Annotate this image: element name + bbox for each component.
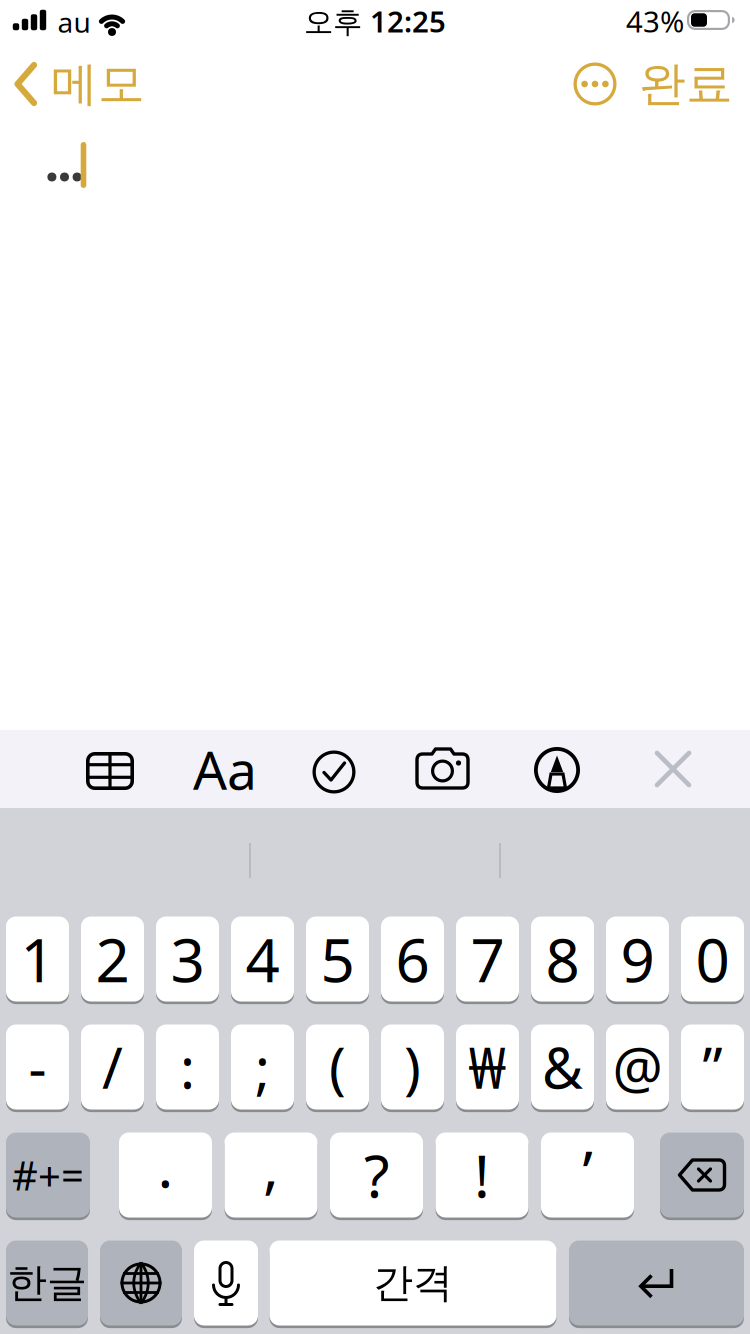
button[interactable]: ” — [681, 1023, 744, 1111]
staticText: ? — [364, 1136, 389, 1214]
button[interactable]: , — [224, 1131, 317, 1219]
staticText: 43% — [626, 1, 684, 40]
staticText: au — [57, 3, 90, 41]
button[interactable]: 3 — [156, 915, 219, 1003]
staticText: 7 — [470, 919, 504, 999]
staticText: 1 — [20, 919, 54, 999]
button[interactable]: 5 — [306, 915, 369, 1003]
button[interactable]: & — [531, 1023, 594, 1111]
button[interactable]: 간격 — [269, 1239, 556, 1327]
staticText: 5 — [320, 919, 354, 999]
button[interactable]: 더 보기 — [570, 59, 620, 109]
staticText: Aa — [193, 734, 257, 804]
button[interactable]: 서식 — [190, 739, 260, 799]
button[interactable]: #+= — [6, 1131, 90, 1219]
button[interactable]: 0 — [681, 915, 744, 1003]
staticText: 9 — [620, 919, 654, 999]
staticText: / — [102, 1030, 123, 1104]
staticText: ; — [255, 1030, 270, 1104]
button[interactable]: @ — [606, 1023, 669, 1111]
staticText: . — [157, 1126, 173, 1204]
staticText: 메모 — [51, 55, 145, 113]
button[interactable]: 한글 — [6, 1239, 88, 1327]
staticText: 완료 — [639, 55, 733, 113]
staticText: 8 — [545, 919, 579, 999]
button[interactable]: 닫기 — [649, 745, 697, 793]
staticText: 6 — [395, 919, 429, 999]
button[interactable]: 메모 — [14, 57, 194, 111]
button[interactable]: ₩ — [456, 1023, 519, 1111]
button[interactable]: 체크리스트 — [304, 742, 364, 802]
button[interactable]: ) — [381, 1023, 444, 1111]
staticText: #+= — [12, 1148, 84, 1201]
button[interactable]: 마크업 — [532, 745, 582, 795]
button[interactable]: . — [119, 1131, 212, 1219]
button[interactable]: ; — [231, 1023, 294, 1111]
staticText: : — [180, 1030, 195, 1104]
button[interactable]: 1 — [6, 915, 69, 1003]
button[interactable]: ( — [306, 1023, 369, 1111]
staticText: @ — [612, 1030, 662, 1104]
staticText: ( — [329, 1030, 346, 1104]
staticText: ’ — [582, 1132, 592, 1210]
button[interactable]: 카메라 — [415, 746, 473, 796]
staticText: , — [263, 1126, 279, 1204]
button[interactable]: ! — [435, 1131, 528, 1219]
staticText: ” — [702, 1030, 722, 1104]
button[interactable]: 표 — [80, 741, 140, 801]
button[interactable]: 2 — [81, 915, 144, 1003]
button[interactable]: 완료 — [638, 58, 734, 110]
button[interactable]: 7 — [456, 915, 519, 1003]
button[interactable]: 리턴 — [569, 1239, 744, 1327]
staticText: 3 — [170, 919, 204, 999]
button[interactable]: : — [156, 1023, 219, 1111]
button[interactable]: / — [81, 1023, 144, 1111]
button[interactable]: 9 — [606, 915, 669, 1003]
button[interactable]: ’ — [541, 1131, 634, 1219]
button[interactable]: ? — [330, 1131, 423, 1219]
staticText: 한글 — [7, 1258, 87, 1307]
staticText: ! — [474, 1136, 490, 1214]
button[interactable]: 받아쓰기 — [194, 1239, 258, 1327]
button[interactable]: 4 — [231, 915, 294, 1003]
staticText: 0 — [695, 919, 729, 999]
staticText: 4 — [245, 919, 279, 999]
button[interactable]: 지우기 — [660, 1131, 744, 1219]
staticText: ₩ — [468, 1030, 506, 1104]
staticText: ) — [404, 1030, 421, 1104]
button[interactable]: 다음 키보드 — [100, 1239, 182, 1327]
staticText: 간격 — [373, 1258, 453, 1307]
staticText: & — [542, 1030, 583, 1104]
button[interactable]: 6 — [381, 915, 444, 1003]
button[interactable]: - — [6, 1023, 69, 1111]
button[interactable]: 8 — [531, 915, 594, 1003]
staticText: - — [28, 1030, 46, 1104]
staticText: 오후 12:25 — [304, 1, 446, 40]
staticText: 2 — [95, 919, 129, 999]
